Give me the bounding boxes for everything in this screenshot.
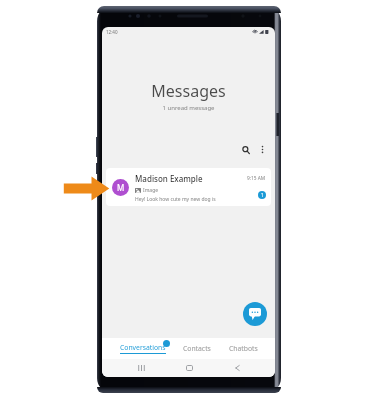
- staticText: Conversations: [120, 343, 166, 352]
- button[interactable]: Contacts: [183, 344, 211, 353]
- staticText: Hey! Look how cute my new dog is: [135, 196, 216, 203]
- button[interactable]: Start new conversation: [243, 302, 267, 326]
- staticText: Chatbots: [229, 344, 258, 353]
- button[interactable]: More options: [256, 143, 269, 156]
- button[interactable]: Recents: [133, 360, 149, 376]
- staticText: Madison Example: [135, 173, 203, 184]
- staticText: Image: [143, 187, 159, 194]
- button[interactable]: Conversations: [120, 343, 166, 354]
- staticText: M: [117, 182, 125, 193]
- staticText: 9:15 AM: [247, 175, 266, 182]
- staticText: Messages: [102, 80, 275, 102]
- staticText: 12:40: [106, 29, 118, 35]
- button[interactable]: M: [106, 168, 271, 206]
- staticText: 1 unread message: [102, 104, 275, 112]
- button[interactable]: Search: [239, 143, 252, 156]
- button[interactable]: Home: [181, 360, 197, 376]
- staticText: 1: [261, 192, 264, 198]
- staticText: Contacts: [183, 344, 211, 353]
- button[interactable]: Chatbots: [229, 344, 258, 353]
- button[interactable]: Back: [229, 360, 245, 376]
